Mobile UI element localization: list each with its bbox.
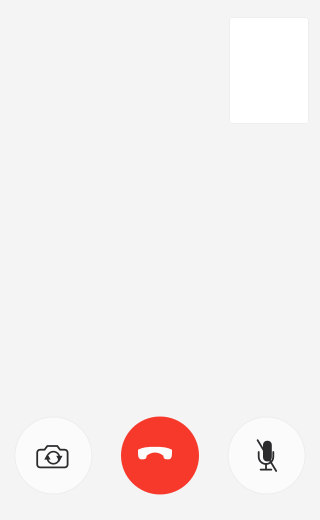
button[interactable]: Flip camera [14,416,92,494]
button[interactable]: End call [121,416,199,494]
button[interactable]: Self view [229,17,309,124]
button[interactable]: Mute [228,416,306,494]
